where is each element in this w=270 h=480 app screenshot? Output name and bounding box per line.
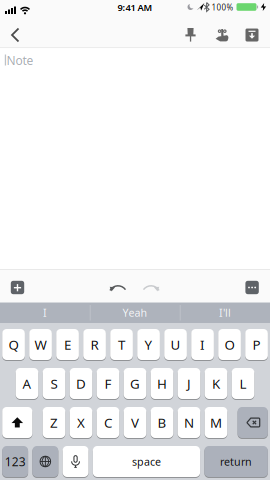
staticText: Note — [6, 52, 33, 68]
staticText: L — [239, 375, 246, 392]
staticText: return — [220, 454, 252, 469]
staticText: B — [157, 414, 166, 431]
staticText: Z — [50, 414, 58, 431]
staticText: H — [157, 375, 167, 392]
staticText: V — [131, 414, 139, 431]
staticText: Yeah — [122, 305, 147, 320]
staticText: T — [118, 336, 125, 353]
staticText: Q — [9, 336, 19, 353]
staticText: A — [22, 375, 31, 392]
staticText: W — [34, 336, 46, 353]
staticText: K — [212, 375, 220, 392]
staticText: Y — [144, 336, 152, 353]
staticText: G — [130, 375, 140, 392]
staticText: 100% — [211, 2, 233, 13]
staticText: J — [187, 375, 191, 392]
staticText: M — [210, 414, 222, 431]
staticText: E — [64, 336, 71, 353]
staticText: O — [224, 336, 234, 353]
staticText: N — [184, 414, 194, 431]
staticText: D — [76, 375, 86, 392]
staticText: I'll — [219, 305, 231, 320]
staticText: 123 — [5, 453, 26, 469]
staticText: U — [170, 336, 180, 353]
staticText: X — [77, 414, 85, 431]
staticText: F — [104, 375, 111, 392]
staticText: S — [50, 375, 57, 392]
staticText: I — [200, 336, 205, 353]
staticText: space — [132, 454, 161, 469]
staticText: C — [104, 414, 112, 431]
staticText: I — [43, 305, 47, 320]
staticText: R — [90, 336, 98, 353]
staticText: P — [253, 336, 261, 353]
staticText: 9:41 AM — [117, 1, 152, 14]
